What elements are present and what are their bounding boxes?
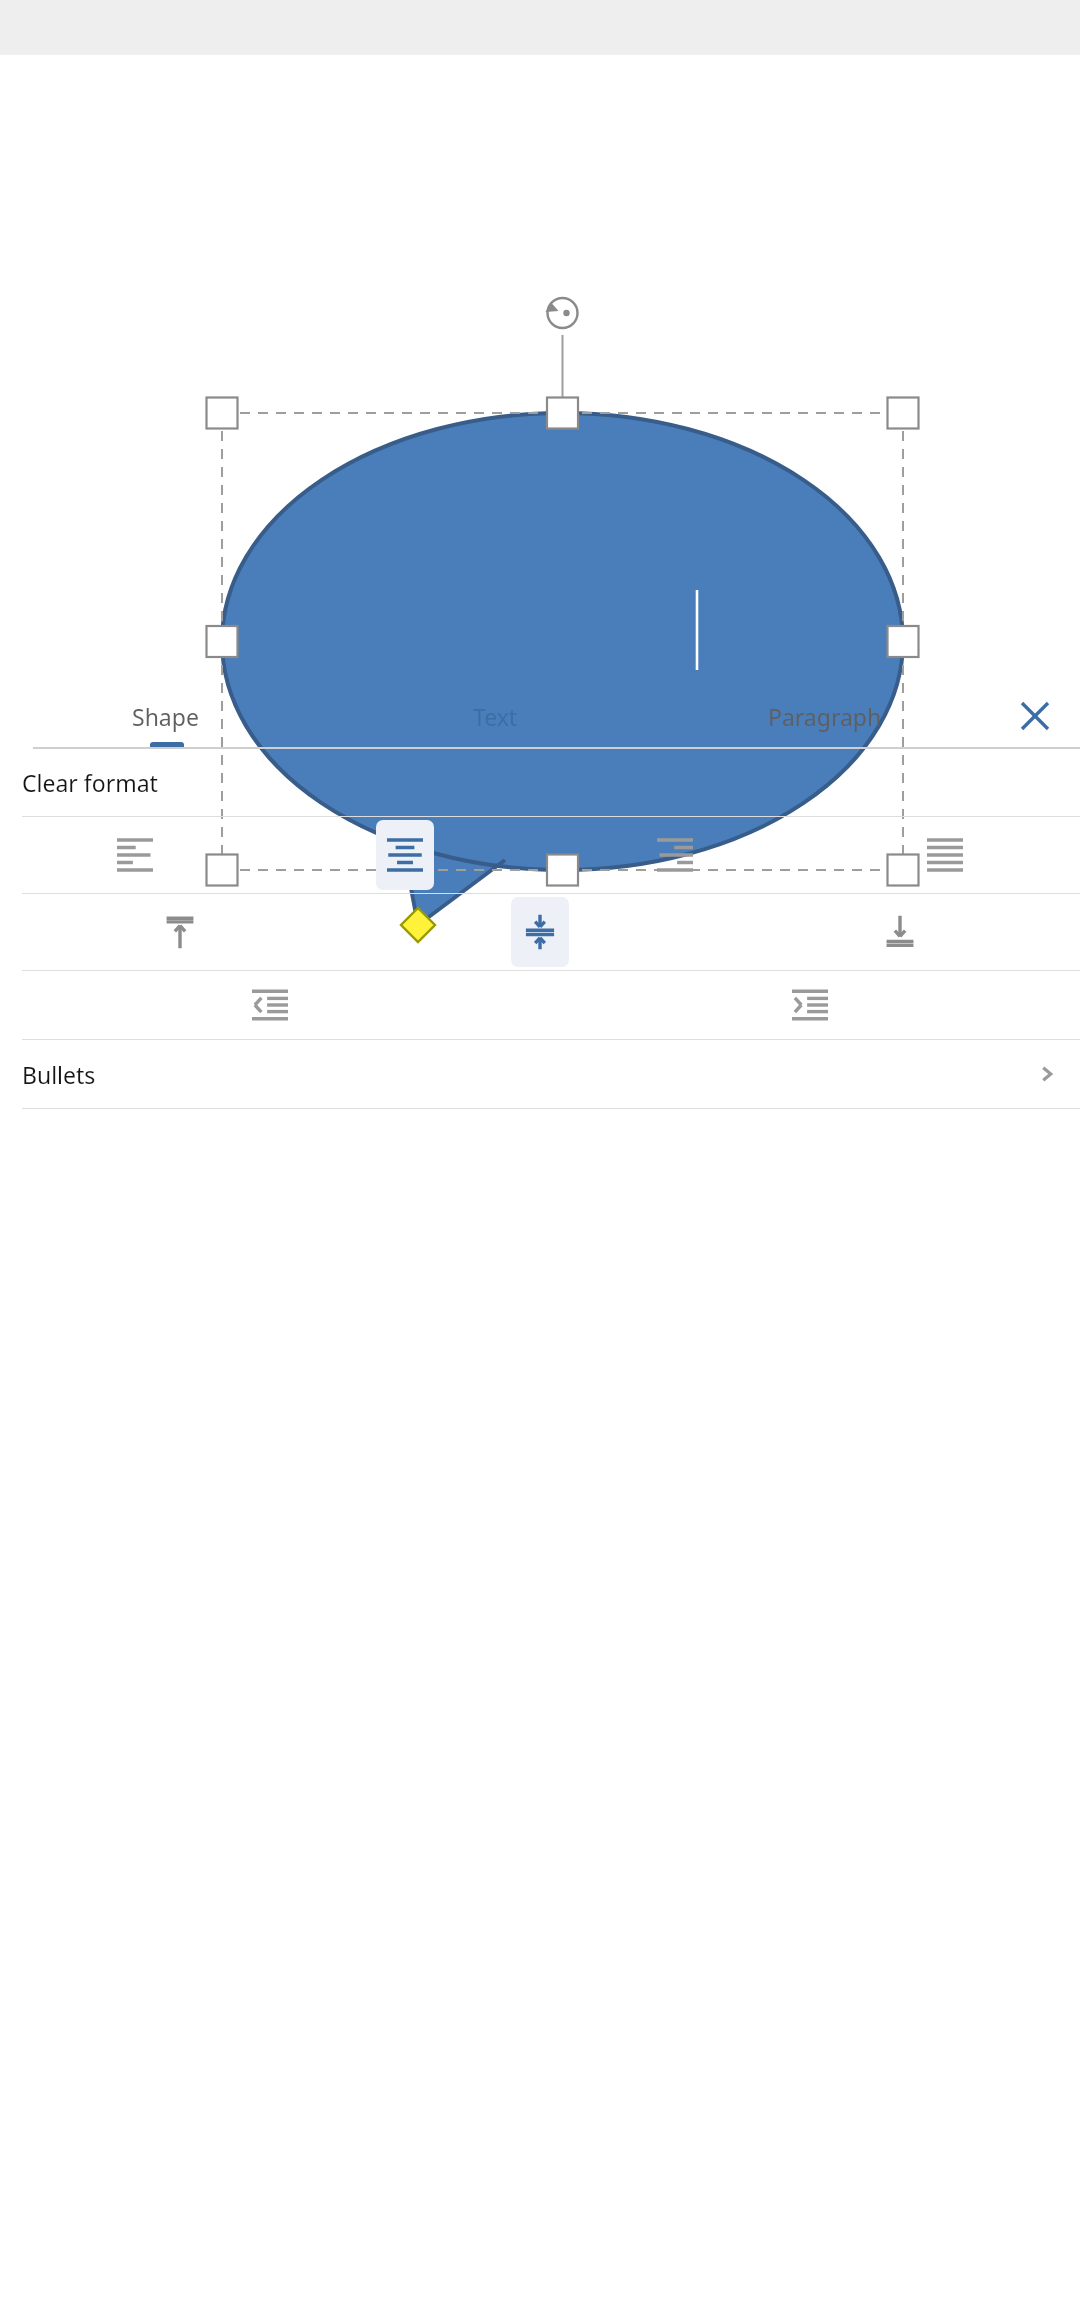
button[interactable]: Align top: [151, 897, 209, 967]
button[interactable]: Align middle: [511, 897, 569, 967]
button[interactable]: Paragraph: [660, 685, 990, 747]
staticText: Text: [473, 701, 518, 732]
button[interactable]: Bullets: [0, 1040, 1080, 1108]
button[interactable]: Align right: [646, 820, 704, 890]
staticText: Paragraph: [768, 701, 882, 732]
button[interactable]: Clear format: [0, 749, 1080, 816]
button[interactable]: Close: [990, 685, 1080, 747]
staticText: Shape: [132, 701, 199, 732]
staticText: Clear format: [22, 767, 158, 798]
staticText: Bullets: [22, 1059, 1036, 1090]
button[interactable]: Align left: [106, 820, 164, 890]
button[interactable]: Align center: [376, 820, 434, 890]
button[interactable]: Increase indent: [779, 975, 841, 1035]
button[interactable]: Align bottom: [871, 897, 929, 967]
button[interactable]: Shape: [0, 685, 330, 747]
button[interactable]: Justify: [916, 820, 974, 890]
button[interactable]: Decrease indent: [239, 975, 301, 1035]
